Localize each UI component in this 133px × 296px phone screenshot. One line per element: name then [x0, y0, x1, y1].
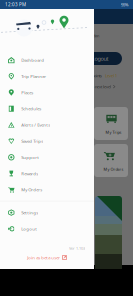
staticText: Settings — [21, 210, 38, 215]
staticText: Rewards — [21, 171, 38, 176]
staticText: 12:03 PM — [5, 1, 26, 8]
button[interactable]: Join as beta user — [0, 251, 94, 264]
button[interactable] — [95, 196, 122, 273]
button[interactable]: Saved Trips — [0, 133, 94, 149]
staticText: Ver 1.103 — [69, 246, 85, 251]
button[interactable]: Support — [0, 149, 94, 165]
staticText: My Orders — [103, 167, 123, 172]
button[interactable]: Settings — [0, 204, 94, 221]
staticText: My Trips — [105, 130, 121, 135]
staticText: 250 pts to next level — [78, 84, 111, 89]
button[interactable]: Schedules — [0, 101, 94, 117]
button[interactable]: My Trips — [94, 107, 128, 140]
button[interactable]: Alerts / Events — [0, 117, 94, 133]
staticText: 55% — [121, 2, 129, 7]
staticText: Good afternoon, Jordan — [60, 33, 99, 38]
staticText: Trip Planner — [21, 73, 46, 79]
button[interactable]: Logout — [78, 52, 122, 65]
staticText: Join as beta user — [27, 255, 60, 260]
staticText: Schedules — [21, 106, 41, 112]
staticText: Dashboard — [21, 57, 44, 63]
button[interactable]: Rewards — [0, 165, 94, 182]
staticText: Logout — [91, 55, 108, 62]
staticText: MDOT Mobility Wallet — [20, 15, 68, 22]
button[interactable]: Logout — [0, 221, 94, 237]
button[interactable]: Dashboard — [0, 52, 94, 68]
button[interactable]: My Orders — [94, 144, 128, 177]
staticText: Support — [21, 154, 39, 160]
staticText: Places — [21, 90, 33, 95]
button[interactable]: My Orders — [0, 182, 94, 198]
button[interactable]: Places — [0, 84, 94, 101]
staticText: Level 1 — [105, 73, 117, 78]
staticText: Logout — [21, 226, 37, 232]
staticText: 1,250 points — [82, 73, 102, 78]
staticText: My Orders — [21, 187, 42, 193]
staticText: Alerts / Events — [21, 122, 50, 128]
button[interactable]: Trip Planner — [0, 68, 94, 84]
staticText: Saved Trips — [21, 138, 43, 144]
